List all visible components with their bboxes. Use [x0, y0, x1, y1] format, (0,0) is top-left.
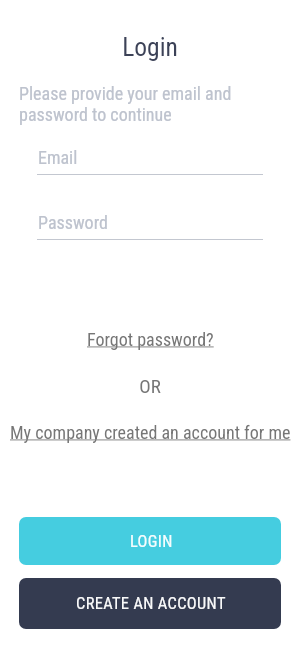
staticText: Email	[38, 147, 78, 168]
button[interactable]: My company created an account for me	[10, 422, 291, 443]
staticText: CREATE AN ACCOUNT	[76, 594, 226, 613]
staticText: Login	[0, 32, 300, 62]
staticText: OR	[0, 375, 300, 397]
staticText: Please provide your email and password t…	[19, 83, 241, 125]
button[interactable]: Password	[37, 209, 263, 241]
button[interactable]: LOGIN	[19, 517, 281, 565]
staticText: LOGIN	[130, 532, 173, 551]
button[interactable]: Email	[37, 144, 263, 176]
button[interactable]: Forgot password?	[87, 329, 214, 350]
button[interactable]: CREATE AN ACCOUNT	[19, 578, 281, 629]
staticText: Password	[38, 212, 108, 233]
